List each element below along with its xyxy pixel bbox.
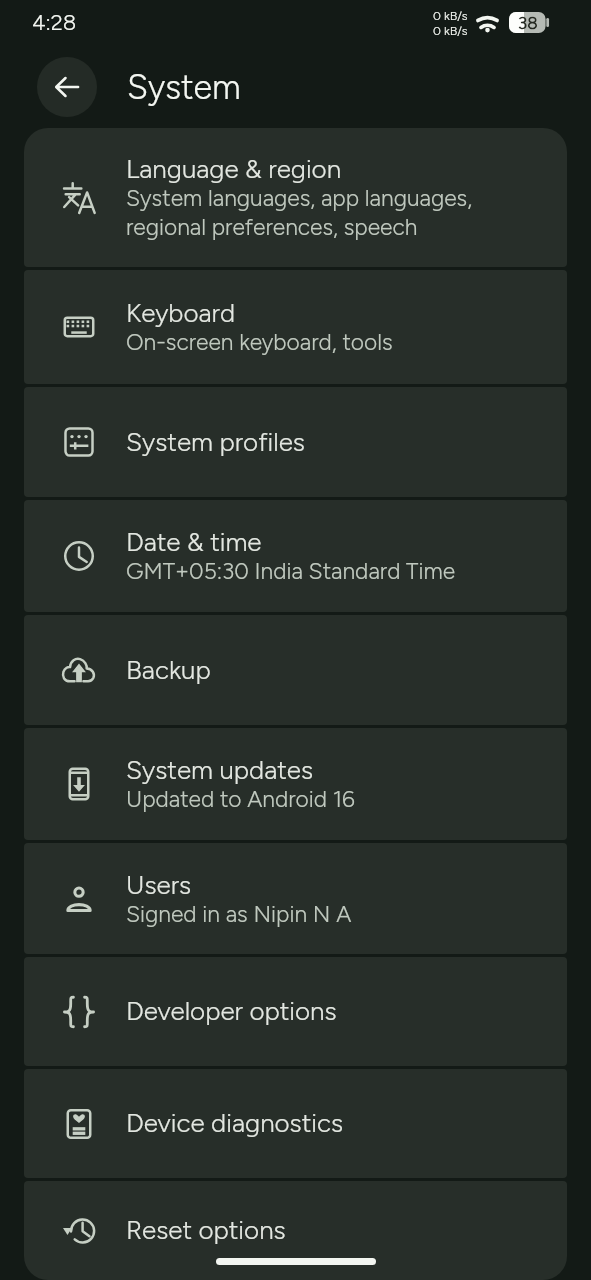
staticText: Device diagnostics	[126, 1107, 344, 1138]
button[interactable]: Device diagnostics	[24, 1069, 567, 1178]
button[interactable]: Back	[37, 57, 97, 117]
button[interactable]: Keyboard	[24, 270, 567, 384]
staticText: Keyboard	[126, 297, 236, 328]
button[interactable]: Backup	[24, 615, 567, 725]
staticText: Updated to Android 16	[126, 785, 355, 812]
staticText: Language & region	[126, 153, 342, 184]
staticText: On-screen keyboard, tools	[126, 328, 393, 355]
staticText: System	[127, 67, 241, 108]
staticText: Developer options	[126, 995, 337, 1026]
staticText: 4:28	[32, 9, 77, 35]
staticText: System updates	[126, 754, 314, 785]
staticText: System languages, app languages, regiona…	[126, 184, 473, 240]
staticText: 0 kB/s	[433, 8, 468, 23]
staticText: Signed in as Nipin N A	[126, 900, 352, 927]
button[interactable]: System profiles	[24, 387, 567, 497]
staticText: 0 kB/s	[433, 23, 468, 38]
staticText: Backup	[126, 654, 211, 685]
staticText: Date & time	[126, 526, 262, 557]
staticText: Reset options	[126, 1214, 286, 1245]
button[interactable]: System updates	[24, 728, 567, 840]
button[interactable]: Developer options	[24, 957, 567, 1066]
button[interactable]: Date & time	[24, 500, 567, 612]
button[interactable]: Language & region	[24, 128, 567, 267]
button[interactable]: Reset options	[24, 1181, 567, 1280]
staticText: GMT+05:30 India Standard Time	[126, 557, 456, 584]
staticText: System profiles	[126, 426, 305, 457]
staticText: 38	[518, 13, 538, 33]
staticText: Users	[126, 869, 192, 900]
button[interactable]: Users	[24, 843, 567, 954]
